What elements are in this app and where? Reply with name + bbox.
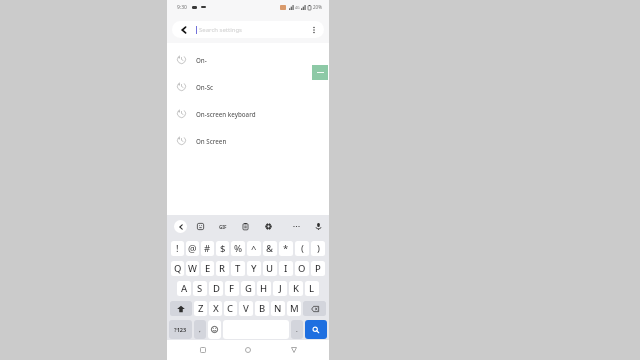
- button[interactable]: .: [291, 320, 303, 339]
- button[interactable]: R: [216, 261, 229, 276]
- button[interactable]: J: [273, 281, 287, 296]
- staticText: I: [284, 262, 288, 275]
- button[interactable]: Y: [247, 261, 261, 276]
- staticText: F: [229, 282, 235, 295]
- button[interactable]: Navigate up: [172, 21, 196, 38]
- staticText: T: [235, 262, 241, 275]
- button[interactable]: ,: [194, 320, 206, 339]
- button[interactable]: N: [271, 301, 285, 316]
- staticText: GIF: [219, 224, 227, 230]
- staticText: *: [283, 242, 289, 255]
- button[interactable]: I: [279, 261, 293, 276]
- button[interactable]: G: [241, 281, 255, 296]
- button[interactable]: B: [255, 301, 269, 316]
- button[interactable]: Settings: [262, 220, 275, 233]
- staticText: #: [204, 242, 211, 255]
- staticText: ): [317, 242, 320, 255]
- staticText: W: [188, 262, 197, 275]
- button[interactable]: *: [279, 241, 293, 256]
- button[interactable]: Emoji: [208, 320, 221, 339]
- button[interactable]: Search: [305, 320, 327, 339]
- button[interactable]: @: [186, 241, 199, 256]
- staticText: R: [219, 262, 226, 275]
- button[interactable]: Notification: [312, 65, 328, 80]
- button[interactable]: Back: [284, 340, 304, 360]
- staticText: 9:30: [177, 4, 187, 11]
- staticText: !: [176, 242, 179, 255]
- staticText: Y: [251, 262, 257, 275]
- button[interactable]: L: [305, 281, 319, 296]
- button[interactable]: M: [287, 301, 301, 316]
- button[interactable]: (: [295, 241, 309, 256]
- button[interactable]: Voice input: [312, 220, 325, 233]
- button[interactable]: Recent apps: [193, 340, 213, 360]
- button[interactable]: C: [224, 301, 237, 316]
- button[interactable]: $: [216, 241, 229, 256]
- button[interactable]: Backspace: [303, 301, 326, 316]
- staticText: Z: [198, 302, 204, 315]
- staticText: E: [205, 262, 211, 275]
- staticText: ^: [251, 242, 257, 255]
- staticText: K: [293, 282, 300, 295]
- button[interactable]: Hide toolbar: [174, 220, 187, 233]
- staticText: %: [234, 242, 243, 255]
- staticText: O: [298, 262, 306, 275]
- button[interactable]: ): [311, 241, 325, 256]
- button[interactable]: On Screen: [167, 127, 329, 154]
- button[interactable]: Z: [194, 301, 207, 316]
- button[interactable]: &: [263, 241, 277, 256]
- staticText: 20%: [313, 4, 322, 10]
- button[interactable]: U: [263, 261, 277, 276]
- button[interactable]: GIF: [216, 220, 229, 233]
- button[interactable]: O: [295, 261, 309, 276]
- button[interactable]: D: [209, 281, 223, 296]
- staticText: H: [260, 282, 268, 295]
- staticText: On Screen: [196, 137, 227, 145]
- button[interactable]: F: [225, 281, 239, 296]
- button[interactable]: K: [289, 281, 303, 296]
- button[interactable]: Home: [238, 340, 258, 360]
- button[interactable]: On-Sc: [167, 73, 329, 100]
- button[interactable]: More: [290, 220, 303, 233]
- staticText: $: [220, 242, 226, 255]
- staticText: (: [301, 242, 304, 255]
- button[interactable]: A: [177, 281, 191, 296]
- staticText: S: [197, 282, 203, 295]
- staticText: D: [213, 282, 220, 295]
- button[interactable]: H: [257, 281, 271, 296]
- staticText: N: [274, 302, 282, 315]
- button[interactable]: Shift: [170, 301, 192, 316]
- button[interactable]: S: [193, 281, 207, 296]
- button[interactable]: !: [171, 241, 184, 256]
- button[interactable]: V: [239, 301, 253, 316]
- staticText: Search settings: [199, 26, 242, 34]
- staticText: On-: [196, 56, 207, 64]
- staticText: 4G: [295, 5, 300, 10]
- button[interactable]: X: [209, 301, 222, 316]
- staticText: On-screen keyboard: [196, 110, 256, 118]
- button[interactable]: On-screen keyboard: [167, 100, 329, 127]
- button[interactable]: P: [311, 261, 325, 276]
- button[interactable]: %: [231, 241, 245, 256]
- staticText: G: [245, 282, 252, 295]
- button[interactable]: ?123: [169, 320, 192, 339]
- staticText: X: [213, 302, 219, 315]
- staticText: On-Sc: [196, 83, 214, 91]
- button[interactable]: #: [201, 241, 214, 256]
- button[interactable]: W: [186, 261, 199, 276]
- button[interactable]: Stickers: [194, 220, 207, 233]
- button[interactable]: More options: [303, 21, 324, 38]
- staticText: P: [315, 262, 321, 275]
- button[interactable]: On-: [167, 46, 329, 73]
- button[interactable]: E: [201, 261, 214, 276]
- staticText: C: [227, 302, 234, 315]
- button[interactable]: ^: [247, 241, 261, 256]
- staticText: &: [266, 242, 274, 255]
- button[interactable]: Clipboard: [239, 220, 252, 233]
- button[interactable]: T: [231, 261, 245, 276]
- staticText: ,: [199, 326, 201, 334]
- button[interactable]: Q: [171, 261, 184, 276]
- staticText: Q: [174, 262, 182, 275]
- staticText: L: [309, 282, 315, 295]
